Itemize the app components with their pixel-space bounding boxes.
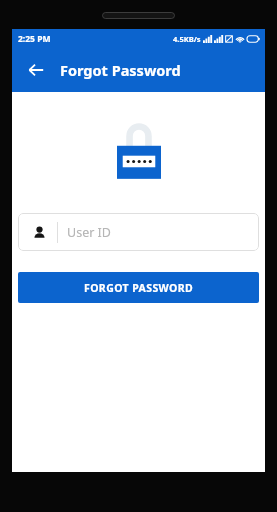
staticText: FORGOT PASSWORD — [84, 281, 194, 295]
staticText: Forgot Password — [60, 60, 181, 80]
button[interactable]: FORGOT PASSWORD — [18, 272, 259, 303]
staticText: 2:25 PM — [18, 33, 51, 45]
staticText: User ID — [67, 224, 111, 241]
button[interactable]: Back — [21, 55, 51, 85]
staticText: 4.5KB/s — [173, 34, 201, 44]
button[interactable]: User ID — [18, 213, 259, 251]
